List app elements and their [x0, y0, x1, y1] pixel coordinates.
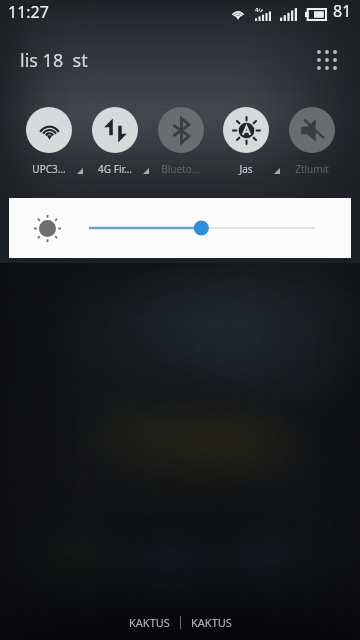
staticText: Jas — [239, 162, 253, 176]
staticText: KAKTUS — [191, 615, 232, 630]
button[interactable]: 4G Fir… — [82, 100, 147, 176]
staticText: UPC3… — [32, 162, 66, 176]
staticText: KAKTUS — [129, 615, 170, 630]
staticText: 4G Fir… — [98, 162, 132, 176]
staticText: lis 18 st — [20, 48, 88, 73]
staticText: Blueto… — [161, 162, 200, 176]
button[interactable]: UPC3… — [16, 100, 81, 176]
button[interactable]: Jas — [213, 100, 278, 176]
button[interactable]: Ztlumit — [279, 100, 344, 176]
staticText: 11:27 — [8, 1, 49, 23]
button[interactable]: Blueto… — [148, 100, 213, 176]
button[interactable]: Settings — [309, 41, 345, 77]
button[interactable]: Brightness — [9, 198, 351, 258]
staticText: 81 — [333, 0, 352, 22]
staticText: Ztlumit — [295, 162, 329, 176]
